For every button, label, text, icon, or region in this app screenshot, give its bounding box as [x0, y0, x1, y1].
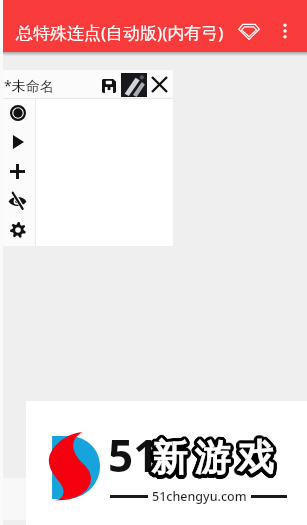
staticText: 51 [108, 425, 159, 485]
button[interactable]: Save [97, 74, 121, 98]
button[interactable]: Close [148, 73, 170, 95]
staticText: 51chengyu.com [152, 488, 247, 505]
button[interactable]: Preview [121, 73, 147, 97]
staticText: *未命名 [4, 76, 54, 95]
staticText: 总特殊连点(自动版)(内有弓) [16, 21, 224, 44]
button[interactable]: Play [0, 128, 35, 155]
button[interactable]: Ad 51chengyu.com [26, 401, 307, 525]
button[interactable]: Favorite [236, 18, 262, 44]
button[interactable]: Add [0, 158, 35, 185]
button[interactable]: Record [0, 99, 35, 126]
button[interactable]: Hide [0, 187, 35, 214]
button[interactable]: More options [272, 18, 298, 44]
button[interactable]: Settings [0, 216, 35, 243]
